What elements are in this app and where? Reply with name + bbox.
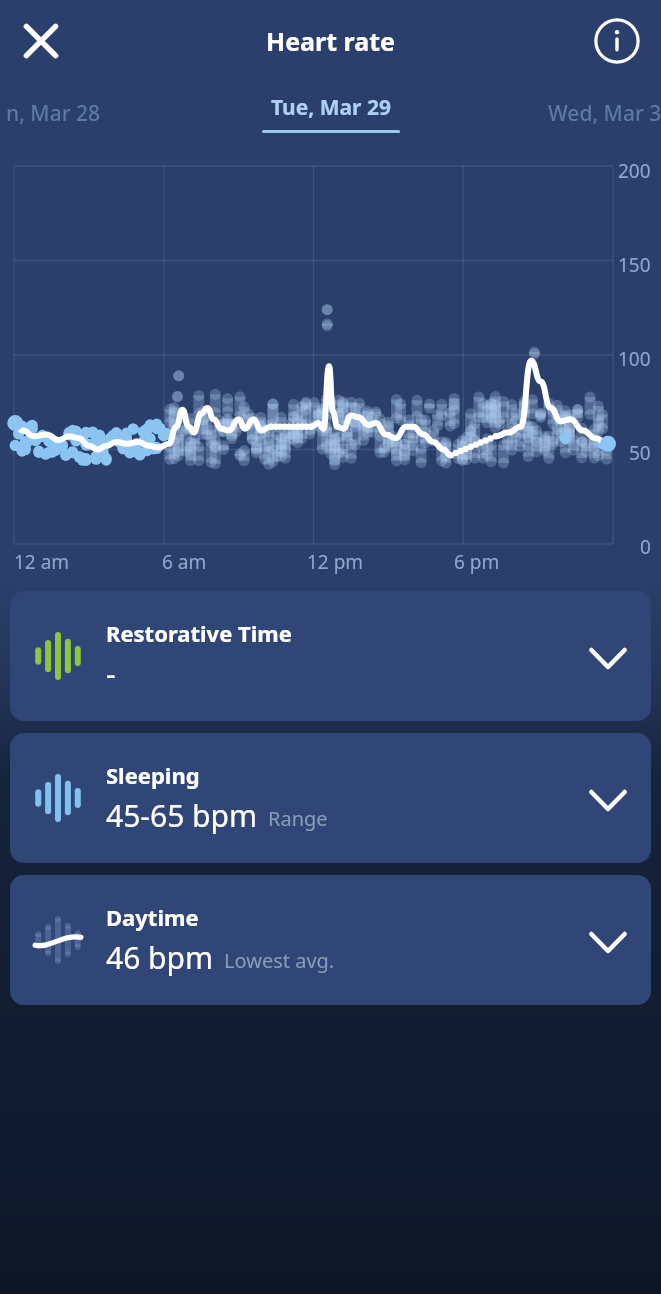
staticText: 200 bbox=[618, 158, 651, 184]
staticText: 0 bbox=[640, 534, 651, 560]
button[interactable]: Tue, Mar 29 bbox=[243, 93, 419, 133]
staticText: 46 bpm bbox=[106, 937, 214, 978]
staticText: 6 pm bbox=[454, 549, 500, 575]
staticText: 100 bbox=[618, 346, 651, 372]
staticText: Wed, Mar 30 bbox=[548, 99, 661, 128]
button[interactable]: Info bbox=[593, 17, 641, 65]
button[interactable]: Expand bbox=[565, 733, 651, 863]
button[interactable]: Expand bbox=[565, 875, 651, 1005]
staticText: n, Mar 28 bbox=[6, 99, 101, 128]
staticText: Daytime bbox=[106, 902, 199, 932]
staticText: 6 am bbox=[162, 549, 207, 575]
button[interactable]: Restorative Time bbox=[10, 591, 651, 721]
button[interactable]: Daytime bbox=[10, 875, 651, 1005]
staticText: Range bbox=[268, 805, 328, 832]
button[interactable]: n, Mar 28 bbox=[0, 85, 128, 141]
button[interactable]: Close bbox=[14, 14, 68, 68]
button[interactable]: Sleeping bbox=[10, 733, 651, 863]
staticText: Restorative Time bbox=[106, 618, 292, 648]
staticText: Sleeping bbox=[106, 760, 200, 790]
staticText: - bbox=[106, 653, 116, 694]
staticText: 12 am bbox=[14, 549, 70, 575]
staticText: 45-65 bpm bbox=[106, 795, 258, 836]
staticText: 12 pm bbox=[307, 549, 364, 575]
button[interactable]: Wed, Mar 30 bbox=[531, 85, 661, 141]
staticText: 50 bbox=[629, 440, 651, 466]
staticText: Heart rate bbox=[266, 24, 395, 58]
staticText: 150 bbox=[618, 252, 651, 278]
staticText: Lowest avg. bbox=[224, 947, 335, 974]
button[interactable]: Expand bbox=[565, 591, 651, 721]
staticText: Tue, Mar 29 bbox=[271, 93, 391, 122]
